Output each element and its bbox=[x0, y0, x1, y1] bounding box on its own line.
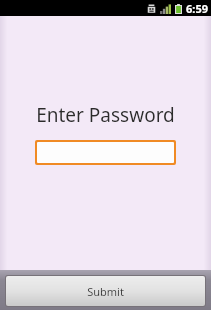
button[interactable]: Submit bbox=[6, 276, 205, 306]
staticText: Enter Password bbox=[36, 102, 175, 128]
staticText: 6:59 bbox=[186, 1, 208, 16]
staticText: Submit bbox=[87, 284, 124, 299]
